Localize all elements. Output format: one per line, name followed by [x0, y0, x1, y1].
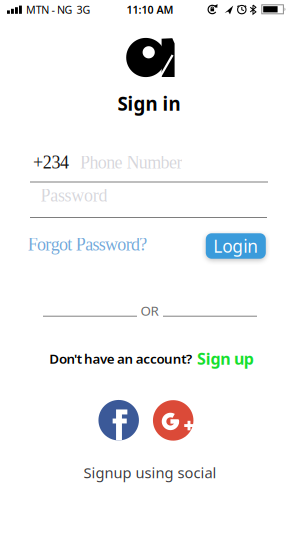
staticText: +234 [33, 152, 69, 172]
staticText: Don't have an account? [49, 350, 192, 367]
button[interactable]: Sign up with Google [153, 400, 193, 441]
staticText: Login [213, 234, 258, 257]
staticText: 3G [76, 2, 90, 17]
staticText: Signup using social [83, 463, 216, 482]
button[interactable]: Sign up [197, 348, 254, 369]
staticText: MTN - NG [26, 2, 73, 17]
staticText: 11:10 AM [126, 2, 173, 17]
staticText: Phone Number [80, 152, 182, 172]
button[interactable]: Sign up with Facebook [98, 400, 139, 440]
staticText: Sign up [197, 348, 254, 369]
staticText: Password [40, 185, 107, 205]
staticText: OR [140, 302, 158, 319]
staticText: Forgot Password? [28, 234, 147, 254]
button[interactable]: Login [206, 233, 266, 259]
button[interactable]: Forgot Password? [28, 234, 147, 254]
staticText: Sign in [117, 91, 180, 116]
